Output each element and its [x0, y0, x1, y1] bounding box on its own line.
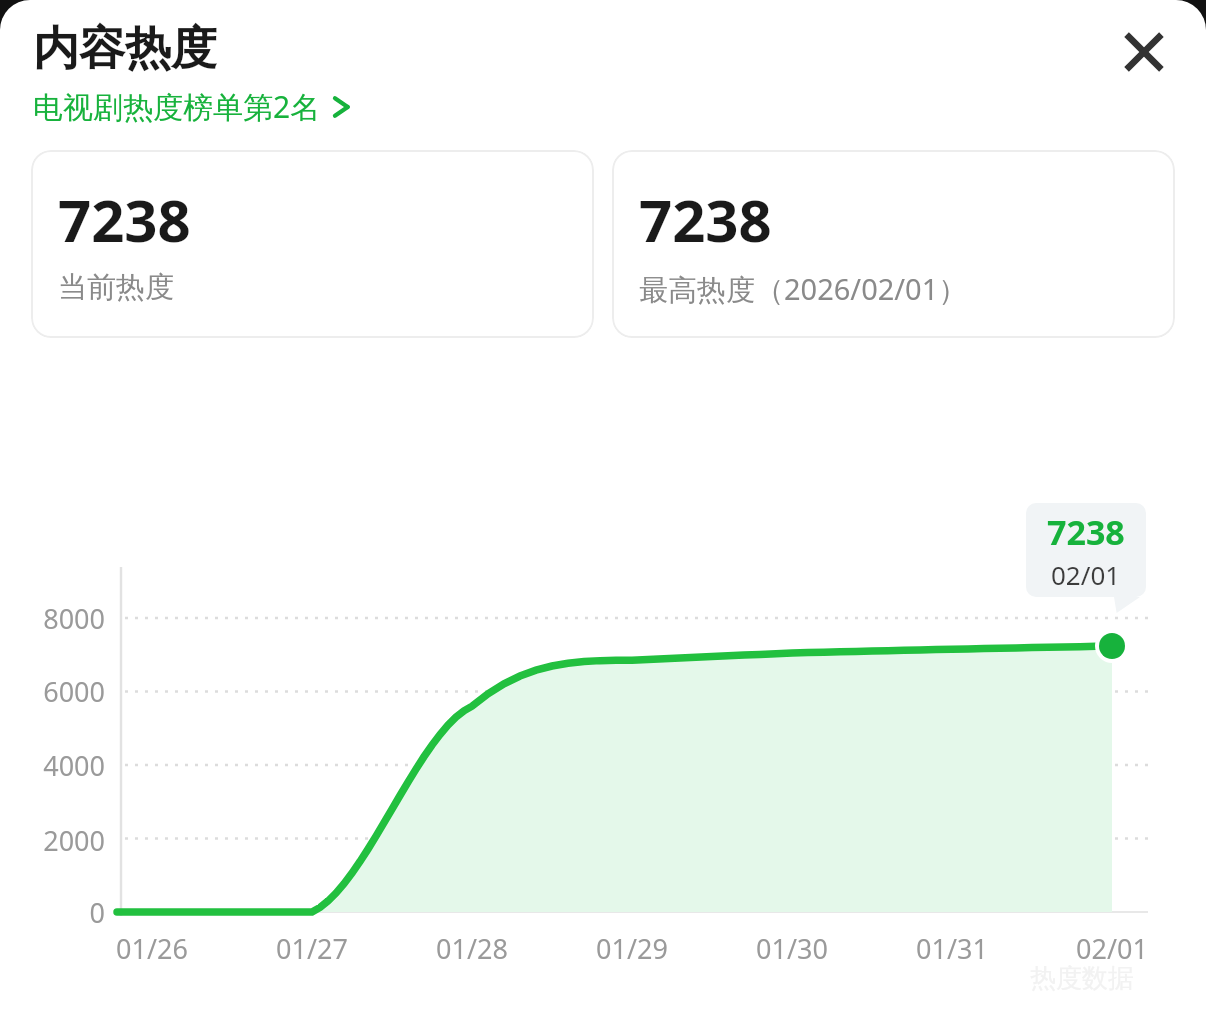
button[interactable]: 7238	[31, 150, 594, 338]
staticText: 电视剧热度榜单第2名	[33, 86, 321, 127]
staticText: 01/29	[572, 930, 692, 967]
staticText: 01/27	[252, 930, 372, 967]
button[interactable]: Close	[1112, 20, 1176, 84]
staticText: 7238	[639, 180, 772, 259]
staticText: 7238	[1047, 509, 1125, 555]
staticText: 2000	[5, 822, 105, 859]
staticText: 6000	[5, 673, 105, 710]
staticText: 01/31	[892, 930, 1012, 967]
staticText: 热度数据	[1030, 962, 1134, 995]
staticText: 02/01	[1051, 557, 1121, 592]
staticText: 当前热度	[58, 269, 174, 306]
staticText: 0	[5, 894, 105, 931]
button[interactable]: 7238	[612, 150, 1175, 338]
staticText: 7238	[58, 180, 191, 259]
staticText: 8000	[5, 600, 105, 637]
staticText: 02/01	[1052, 930, 1172, 967]
staticText: 01/28	[412, 930, 532, 967]
staticText: 01/30	[732, 930, 852, 967]
staticText: 最高热度（2026/02/01）	[639, 269, 968, 309]
staticText: 4000	[5, 747, 105, 784]
staticText: 内容热度	[33, 20, 217, 78]
button[interactable]: 电视剧热度榜单第2名	[33, 86, 353, 127]
staticText: 01/26	[92, 930, 212, 967]
